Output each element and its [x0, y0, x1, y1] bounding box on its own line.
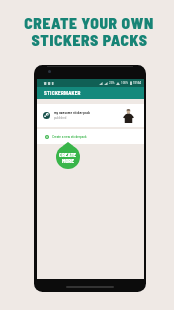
button[interactable]: Create more stickers [56, 142, 80, 169]
staticText: Create a new stickerpack [52, 135, 87, 139]
staticText: my awesome sticker pack [54, 111, 91, 115]
staticText: MORE [62, 158, 74, 164]
staticText: 17:54 [133, 81, 141, 85]
button[interactable]: Create a new stickerpack [37, 129, 144, 144]
button[interactable]: my awesome sticker pack [37, 104, 144, 127]
staticText: STICKERS PACKS [31, 30, 148, 49]
staticText: STICKERMAKER [44, 90, 81, 96]
staticText: CREATE YOUR OWN [24, 13, 154, 32]
staticText: CREATE [59, 152, 76, 158]
button[interactable]: STICKERMAKER [37, 87, 144, 99]
staticText: published [54, 116, 67, 120]
staticText: 100% [121, 81, 129, 85]
staticText: 23% [109, 81, 115, 85]
